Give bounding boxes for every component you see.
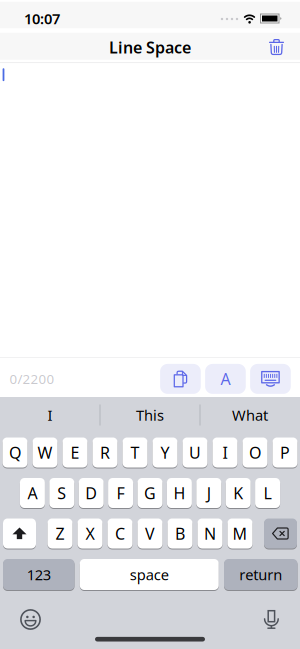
staticText: Y [160, 442, 169, 463]
button[interactable]: Y [152, 437, 177, 467]
button[interactable]: Paste [160, 364, 201, 394]
staticText: L [264, 482, 272, 504]
button[interactable]: 123 [3, 559, 74, 590]
staticText: V [145, 523, 155, 544]
staticText: Line Space [109, 37, 191, 58]
staticText: P [280, 442, 290, 463]
button[interactable]: Delete [261, 33, 300, 60]
staticText: W [37, 442, 52, 463]
staticText: K [233, 482, 243, 504]
button[interactable]: This [100, 397, 200, 433]
staticText: I [47, 405, 52, 425]
button[interactable]: I [212, 437, 237, 467]
staticText: R [100, 442, 110, 463]
staticText: U [189, 442, 201, 463]
button[interactable]: M [227, 518, 252, 548]
button[interactable]: Shift [3, 518, 36, 548]
button[interactable]: G [137, 478, 162, 508]
button[interactable]: L [255, 478, 280, 508]
button[interactable]: K [226, 478, 251, 508]
staticText: D [85, 482, 97, 504]
button[interactable]: What [200, 397, 300, 433]
button[interactable]: Dictate [263, 610, 280, 629]
button[interactable]: N [197, 518, 222, 548]
staticText: What [232, 405, 268, 425]
button[interactable]: I [0, 397, 100, 433]
button[interactable]: T [122, 437, 147, 467]
button[interactable]: C [107, 518, 132, 548]
button[interactable]: Text style [205, 364, 246, 394]
staticText: B [175, 523, 185, 544]
staticText: 10:07 [24, 9, 60, 28]
button[interactable]: S [49, 478, 74, 508]
button[interactable]: J [196, 478, 221, 508]
staticText: This [136, 405, 164, 425]
staticText: space [130, 565, 169, 584]
button[interactable]: O [242, 437, 267, 467]
staticText: J [207, 482, 211, 504]
button[interactable]: B [167, 518, 192, 548]
staticText: return [239, 565, 282, 584]
staticText: H [173, 482, 185, 504]
staticText: X [85, 523, 94, 544]
staticText: F [117, 482, 125, 504]
staticText: S [57, 482, 66, 504]
staticText: M [232, 523, 247, 544]
button[interactable]: E [62, 437, 87, 467]
staticText: Q [9, 442, 21, 463]
staticText: C [115, 523, 125, 544]
button[interactable]: P [272, 437, 297, 467]
button[interactable]: Q [2, 437, 27, 467]
button[interactable]: F [108, 478, 133, 508]
button[interactable]: R [92, 437, 117, 467]
staticText: A [220, 368, 230, 389]
button[interactable]: space [80, 559, 219, 590]
staticText: T [130, 442, 139, 463]
staticText: 0/2200 [9, 370, 54, 388]
staticText: I [222, 442, 227, 463]
button[interactable]: V [137, 518, 162, 548]
button[interactable]: X [77, 518, 102, 548]
button[interactable]: Z [47, 518, 72, 548]
button[interactable]: Emoji [20, 609, 41, 630]
button[interactable]: A [20, 478, 45, 508]
button[interactable]: H [167, 478, 192, 508]
staticText: N [204, 523, 216, 544]
staticText: O [249, 442, 261, 463]
button[interactable]: Delete [264, 518, 297, 548]
staticText: 123 [27, 565, 51, 584]
button[interactable]: Dismiss keyboard [250, 364, 291, 394]
button[interactable]: U [182, 437, 207, 467]
button[interactable]: D [79, 478, 104, 508]
staticText: Z [55, 523, 64, 544]
button[interactable]: W [32, 437, 57, 467]
staticText: G [144, 482, 156, 504]
button[interactable]: return [224, 559, 297, 590]
staticText: E [70, 442, 79, 463]
staticText: A [27, 482, 37, 504]
